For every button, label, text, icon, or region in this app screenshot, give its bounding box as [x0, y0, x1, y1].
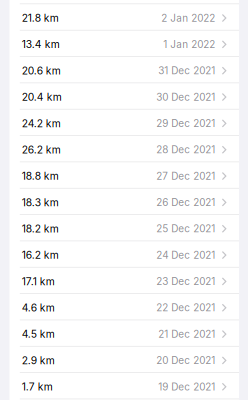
staticText: 21.8 km	[22, 12, 59, 24]
staticText: 22 Dec 2021	[156, 302, 215, 314]
staticText: 18.8 km	[22, 170, 59, 182]
staticText: 4.5 km	[22, 328, 55, 340]
staticText: 1 Jan 2022	[163, 38, 215, 50]
button[interactable]: 18.3 km	[9, 189, 239, 215]
button[interactable]: 13.4 km	[9, 30, 239, 57]
staticText: 4.6 km	[22, 301, 55, 314]
button[interactable]: 20.6 km	[9, 57, 239, 83]
staticText: 20.4 km	[22, 91, 62, 103]
staticText: 30 Dec 2021	[156, 91, 215, 103]
button[interactable]: 2.9 km	[9, 347, 239, 373]
staticText: 13.4 km	[22, 38, 60, 51]
button[interactable]: 26.2 km	[9, 136, 239, 162]
staticText: 20.6 km	[22, 64, 61, 77]
staticText: 26.2 km	[22, 143, 61, 156]
button[interactable]: 4.6 km	[9, 294, 239, 320]
staticText: 25 Dec 2021	[156, 223, 215, 235]
button[interactable]: 20.4 km	[9, 83, 239, 109]
button[interactable]: 21.8 km	[9, 4, 239, 30]
button[interactable]: 18.2 km	[9, 215, 239, 241]
button[interactable]: 16.5 km	[9, 0, 239, 4]
staticText: 31 Dec 2021	[158, 65, 215, 77]
staticText: 16.2 km	[22, 249, 59, 261]
staticText: 26 Dec 2021	[156, 196, 215, 208]
staticText: 27 Dec 2021	[156, 170, 215, 182]
staticText: 18.3 km	[22, 196, 59, 209]
button[interactable]: 4.5 km	[9, 320, 239, 347]
button[interactable]: 24.2 km	[9, 110, 239, 136]
staticText: 28 Dec 2021	[156, 144, 215, 156]
staticText: 21 Dec 2021	[158, 328, 215, 340]
staticText: 2.9 km	[22, 354, 55, 367]
staticText: 1.7 km	[22, 380, 53, 393]
staticText: 19 Dec 2021	[158, 381, 215, 393]
button[interactable]: 16.2 km	[9, 241, 239, 268]
staticText: 29 Dec 2021	[156, 117, 215, 129]
staticText: 24.2 km	[22, 117, 61, 130]
staticText: 2 Jan 2022	[161, 12, 215, 24]
staticText: 18.2 km	[22, 222, 59, 235]
button[interactable]: 18.8 km	[9, 162, 239, 188]
staticText: 17.1 km	[22, 275, 55, 288]
staticText: 23 Dec 2021	[156, 275, 215, 287]
staticText: 24 Dec 2021	[156, 249, 215, 261]
button[interactable]: 1.7 km	[9, 373, 239, 399]
staticText: 20 Dec 2021	[156, 354, 215, 366]
button[interactable]: 17.1 km	[9, 268, 239, 294]
